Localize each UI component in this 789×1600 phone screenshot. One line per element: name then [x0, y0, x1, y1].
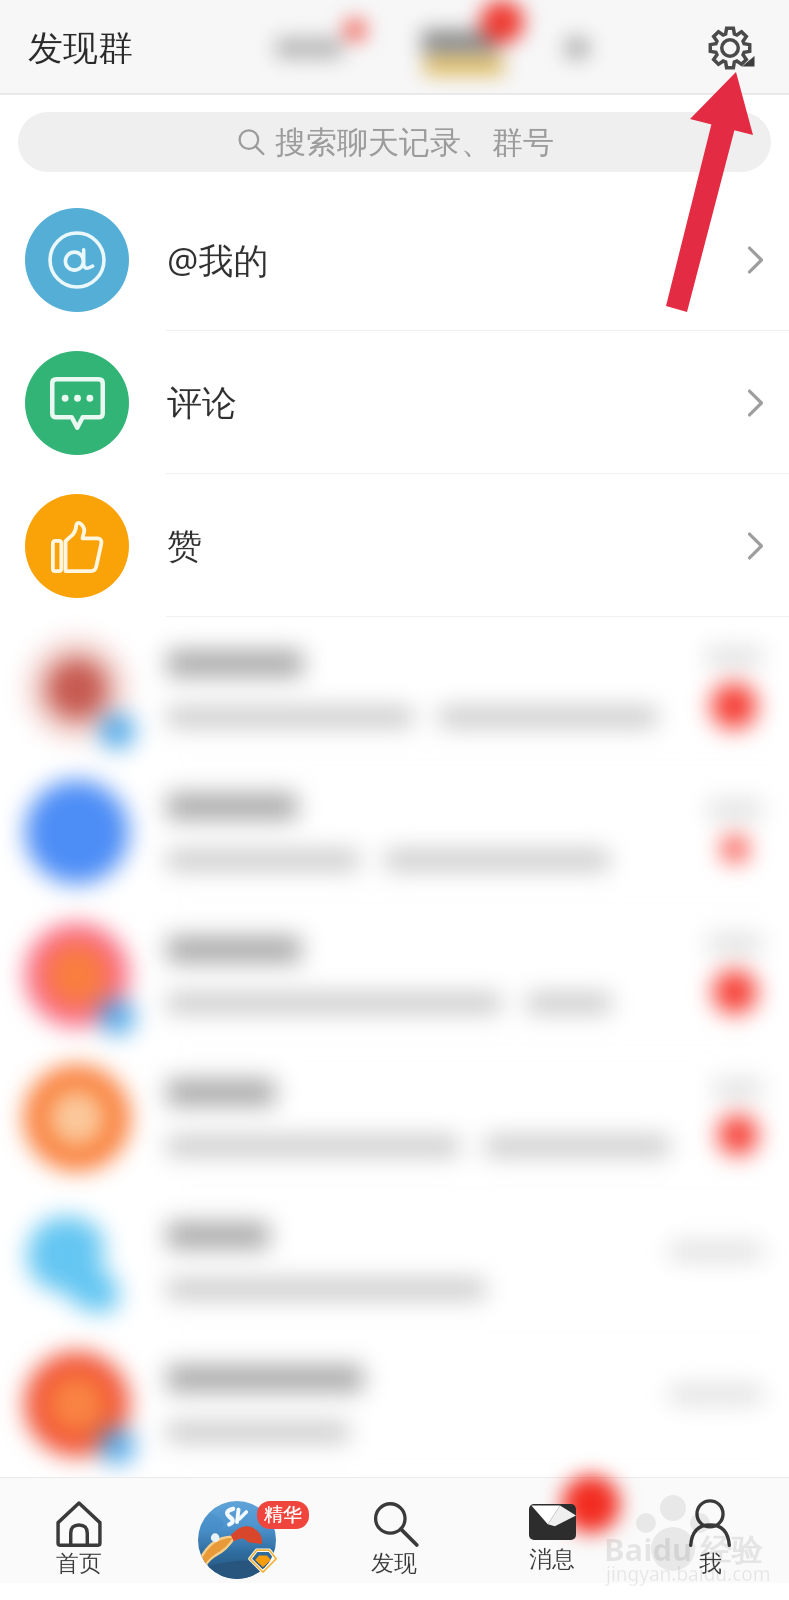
button[interactable]	[0, 903, 789, 1046]
staticText: @我的	[167, 236, 269, 284]
button[interactable]	[0, 617, 789, 760]
button[interactable]: Settings	[698, 16, 762, 80]
button[interactable]: 消息	[473, 1477, 631, 1574]
staticText: 发现群	[28, 26, 133, 70]
button[interactable]: 精华	[157, 1477, 315, 1585]
button[interactable]: 首页	[0, 1477, 157, 1578]
staticText: 赞	[167, 524, 202, 568]
button[interactable]	[0, 1332, 789, 1475]
button[interactable]	[0, 1189, 789, 1332]
button[interactable]: 赞	[0, 474, 789, 617]
staticText: 消息	[529, 1545, 575, 1574]
button[interactable]: @我的	[0, 188, 789, 331]
staticText: 精华	[264, 1503, 302, 1527]
staticText: 发现	[371, 1549, 417, 1578]
staticText: 评论	[167, 381, 237, 425]
staticText: Baidu 经验	[604, 1528, 763, 1570]
staticText: jingyan.baidu.com	[606, 1561, 771, 1587]
staticText: 我	[699, 1549, 722, 1578]
staticText: 搜索聊天记录、群号	[275, 123, 554, 162]
button[interactable]: 搜索聊天记录、群号	[18, 112, 771, 172]
button[interactable]: 发现	[315, 1477, 473, 1578]
button[interactable]: 我	[631, 1477, 789, 1578]
staticText: 首页	[56, 1549, 102, 1578]
button[interactable]: 评论	[0, 331, 789, 474]
button[interactable]	[0, 760, 789, 903]
button[interactable]	[0, 1046, 789, 1189]
